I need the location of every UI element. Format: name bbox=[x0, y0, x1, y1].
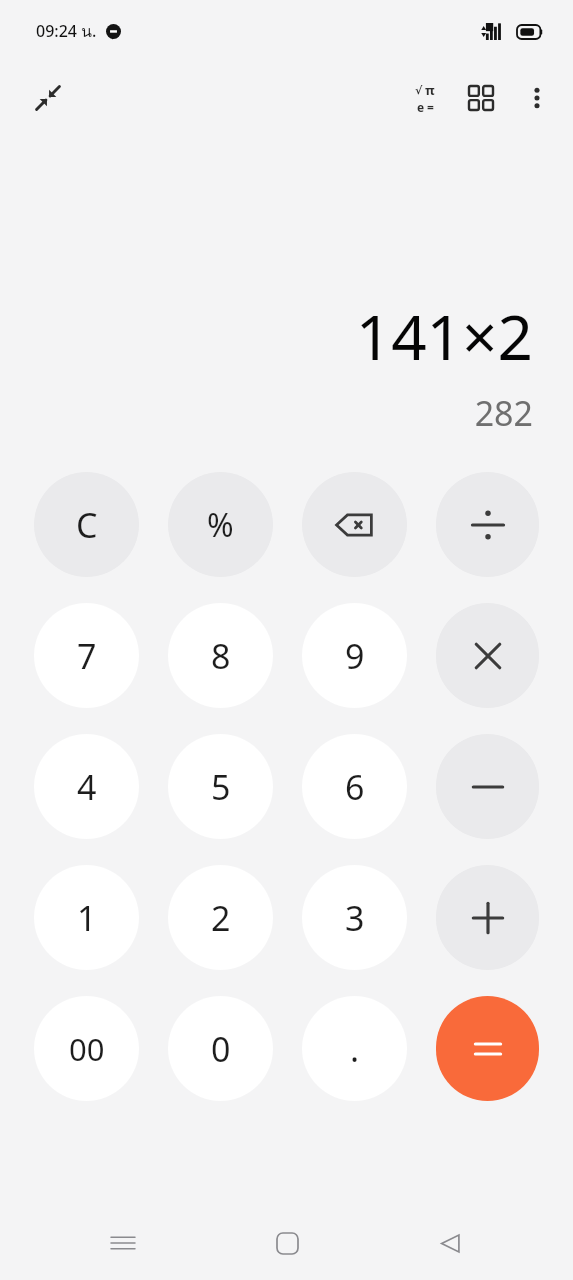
staticText: 00 bbox=[69, 1028, 105, 1070]
button[interactable]: 1 bbox=[34, 865, 139, 970]
button[interactable]: 4 bbox=[34, 734, 139, 839]
button[interactable]: Home bbox=[247, 1206, 327, 1280]
staticText: 0 bbox=[211, 1026, 231, 1072]
button[interactable]: Collapse bbox=[20, 70, 76, 126]
button[interactable]: % bbox=[168, 472, 273, 577]
staticText: 7 bbox=[77, 633, 97, 679]
button[interactable]: C bbox=[34, 472, 139, 577]
staticText: e bbox=[417, 99, 425, 115]
staticText: 09:24 น. bbox=[36, 19, 97, 44]
staticText: % bbox=[207, 503, 234, 547]
button[interactable]: Back bbox=[410, 1206, 490, 1280]
staticText: π bbox=[425, 81, 435, 99]
staticText: √ bbox=[415, 84, 423, 97]
button[interactable]: 6 bbox=[302, 734, 407, 839]
button[interactable]: Backspace bbox=[302, 472, 407, 577]
button[interactable]: Multiply bbox=[436, 603, 539, 708]
button[interactable]: 7 bbox=[34, 603, 139, 708]
staticText: 1 bbox=[77, 895, 97, 941]
staticText: = bbox=[427, 99, 434, 115]
staticText: 2 bbox=[211, 895, 231, 941]
button[interactable]: Scientific mode bbox=[397, 70, 453, 126]
button[interactable]: Plus bbox=[436, 865, 539, 970]
staticText: 4 bbox=[77, 764, 97, 810]
button[interactable]: Recent apps bbox=[83, 1206, 163, 1280]
staticText: 141×2 bbox=[355, 294, 533, 378]
staticText: 5 bbox=[211, 764, 231, 810]
button[interactable]: 0 bbox=[168, 996, 273, 1101]
button[interactable]: More options bbox=[509, 70, 565, 126]
staticText: 9 bbox=[345, 633, 365, 679]
button[interactable]: Equals bbox=[436, 996, 539, 1101]
button[interactable]: 5 bbox=[168, 734, 273, 839]
button[interactable]: Unit converter bbox=[453, 70, 509, 126]
staticText: 6 bbox=[345, 764, 365, 810]
button[interactable]: . bbox=[302, 996, 407, 1101]
button[interactable]: Minus bbox=[436, 734, 539, 839]
staticText: 282 bbox=[474, 390, 533, 436]
button[interactable]: 00 bbox=[34, 996, 139, 1101]
button[interactable]: 2 bbox=[168, 865, 273, 970]
button[interactable]: 8 bbox=[168, 603, 273, 708]
staticText: C bbox=[76, 502, 98, 548]
staticText: 3 bbox=[345, 895, 365, 941]
staticText: . bbox=[350, 1026, 360, 1072]
button[interactable]: Divide bbox=[436, 472, 539, 577]
button[interactable]: 3 bbox=[302, 865, 407, 970]
button[interactable]: 9 bbox=[302, 603, 407, 708]
staticText: 8 bbox=[211, 633, 231, 679]
